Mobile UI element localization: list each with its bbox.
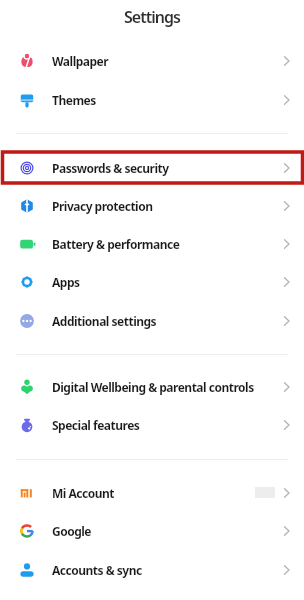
- staticText: Battery & performance: [52, 236, 283, 252]
- staticText: Google: [52, 523, 283, 539]
- staticText: Wallpaper: [52, 53, 283, 69]
- button[interactable]: Privacy protection: [0, 187, 304, 225]
- staticText: Passwords & security: [52, 160, 283, 176]
- staticText: Privacy protection: [52, 198, 283, 214]
- button[interactable]: Battery & performance: [0, 225, 304, 263]
- button[interactable]: Google: [0, 512, 304, 550]
- button[interactable]: Passwords & security: [0, 148, 304, 187]
- button[interactable]: Themes: [0, 80, 304, 119]
- staticText: Settings: [124, 6, 180, 28]
- button[interactable]: Accounts & sync: [0, 550, 304, 589]
- staticText: Special features: [52, 417, 283, 433]
- staticText: Mi Account: [52, 485, 255, 501]
- staticText: Themes: [52, 92, 283, 108]
- button[interactable]: Special features: [0, 406, 304, 444]
- staticText: Digital Wellbeing & parental controls: [52, 379, 283, 395]
- staticText: Additional settings: [52, 313, 283, 329]
- button[interactable]: Digital Wellbeing & parental controls: [0, 368, 304, 406]
- staticText: Accounts & sync: [52, 562, 283, 578]
- button[interactable]: Wallpaper: [0, 42, 304, 80]
- button[interactable]: Apps: [0, 263, 304, 301]
- button[interactable]: Additional settings: [0, 301, 304, 340]
- button[interactable]: Mi Account: [0, 473, 304, 512]
- staticText: Apps: [52, 274, 283, 290]
